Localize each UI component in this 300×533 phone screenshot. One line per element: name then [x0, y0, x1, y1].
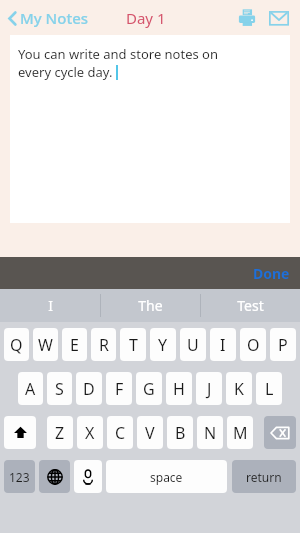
button[interactable]: Shift	[4, 416, 36, 449]
staticText: O	[247, 334, 260, 356]
staticText: S	[55, 378, 64, 400]
button[interactable]: U	[180, 328, 206, 361]
staticText: You can write and store notes on	[18, 45, 219, 63]
button[interactable]: J	[196, 372, 222, 405]
button[interactable]: My Notes	[5, 3, 92, 33]
staticText: U	[187, 334, 199, 356]
button[interactable]: 123	[4, 460, 35, 493]
staticText: H	[173, 378, 185, 400]
button[interactable]: L	[256, 372, 282, 405]
staticText: W	[38, 334, 53, 356]
button[interactable]: Done	[243, 258, 300, 289]
button[interactable]: I	[0, 289, 100, 322]
staticText: space	[150, 469, 183, 485]
button[interactable]: O	[240, 328, 266, 361]
staticText: Day 1	[126, 8, 166, 28]
button[interactable]: W	[33, 328, 58, 361]
staticText: I	[48, 296, 53, 315]
button[interactable]: C	[107, 416, 133, 449]
staticText: The	[138, 296, 163, 315]
staticText: M	[233, 422, 248, 444]
staticText: 123	[9, 469, 30, 485]
staticText: every cycle day.	[18, 63, 113, 81]
staticText: Done	[253, 264, 290, 283]
button[interactable]: V	[137, 416, 163, 449]
button[interactable]: Delete	[264, 416, 296, 449]
staticText: R	[99, 334, 109, 356]
staticText: Z	[55, 422, 65, 444]
staticText: I	[220, 334, 226, 356]
staticText: D	[83, 378, 95, 400]
button[interactable]: I	[210, 328, 236, 361]
staticText: K	[234, 378, 244, 400]
staticText: N	[204, 422, 217, 444]
button[interactable]: The	[101, 289, 200, 322]
button[interactable]: X	[77, 416, 103, 449]
staticText: E	[70, 334, 79, 356]
button[interactable]: T	[120, 328, 146, 361]
staticText: T	[129, 334, 138, 356]
staticText: X	[85, 422, 95, 444]
staticText: My Notes	[20, 8, 89, 28]
staticText: return	[246, 469, 282, 485]
button[interactable]: G	[136, 372, 162, 405]
button[interactable]: Email	[265, 7, 293, 30]
staticText: F	[115, 378, 124, 400]
staticText: L	[265, 378, 274, 400]
staticText: Y	[158, 334, 168, 356]
staticText: J	[207, 378, 212, 400]
button[interactable]: D	[76, 372, 102, 405]
button[interactable]: R	[91, 328, 116, 361]
button[interactable]: H	[166, 372, 192, 405]
button[interactable]: S	[47, 372, 72, 405]
staticText: P	[278, 334, 288, 356]
staticText: Test	[237, 296, 264, 315]
button[interactable]: Dictate	[74, 460, 102, 493]
button[interactable]: A	[18, 372, 43, 405]
button[interactable]: P	[270, 328, 296, 361]
staticText: A	[25, 378, 36, 400]
button[interactable]: N	[197, 416, 223, 449]
button[interactable]: space	[106, 460, 227, 493]
button[interactable]: Print	[234, 5, 260, 31]
button[interactable]: M	[227, 416, 253, 449]
button[interactable]: E	[62, 328, 87, 361]
button[interactable]: Test	[201, 289, 300, 322]
staticText: G	[143, 378, 155, 400]
staticText: Q	[10, 334, 23, 356]
button[interactable]: K	[226, 372, 252, 405]
staticText: C	[115, 422, 126, 444]
button[interactable]: B	[167, 416, 193, 449]
button[interactable]: Q	[4, 328, 29, 361]
button[interactable]: Z	[47, 416, 73, 449]
staticText: B	[175, 422, 186, 444]
button[interactable]: return	[232, 460, 296, 493]
button[interactable]: F	[106, 372, 132, 405]
button[interactable]: Y	[150, 328, 176, 361]
staticText: V	[145, 422, 155, 444]
button[interactable]: You can write and store notes on	[10, 35, 290, 223]
button[interactable]: Switch keyboard	[39, 460, 70, 493]
